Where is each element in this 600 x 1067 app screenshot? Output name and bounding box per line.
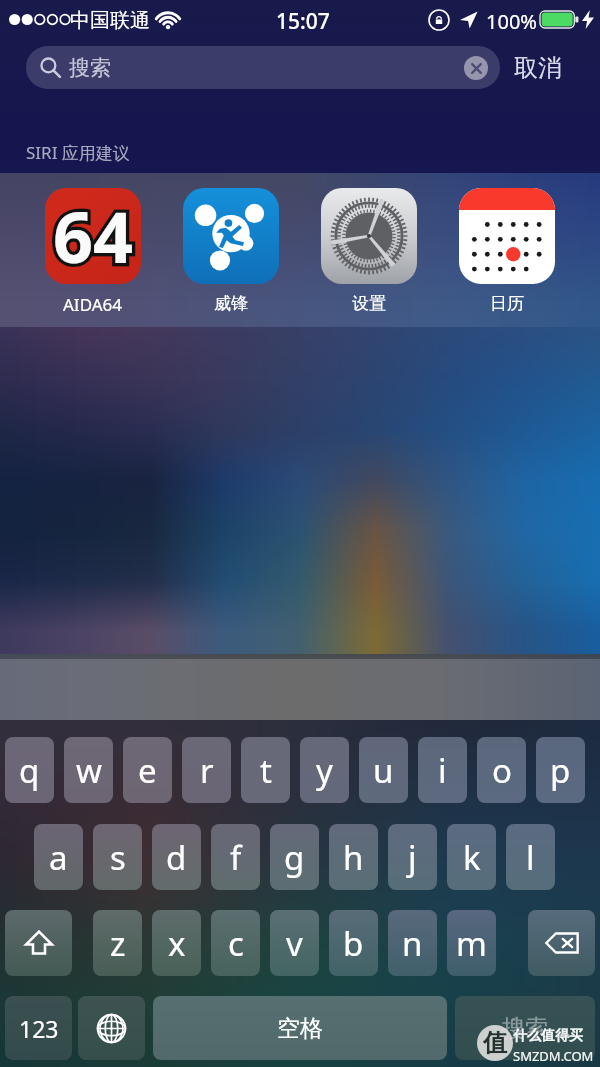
button[interactable]: p	[536, 737, 585, 803]
button[interactable]: j	[388, 824, 437, 890]
staticText: l	[526, 835, 535, 880]
staticText: 中国联通	[70, 8, 150, 33]
staticText: p	[550, 748, 571, 793]
staticText: z	[110, 921, 126, 966]
staticText: x	[168, 921, 186, 966]
staticText: 64	[53, 188, 134, 283]
staticText: r	[200, 748, 214, 793]
button[interactable]: a	[34, 824, 83, 890]
staticText: e	[138, 748, 157, 793]
staticText: s	[110, 835, 126, 880]
button[interactable]: r	[182, 737, 231, 803]
staticText: AIDA64	[63, 293, 123, 316]
button[interactable]: g	[270, 824, 319, 890]
button[interactable]: 123	[5, 996, 72, 1060]
staticText: 搜索	[502, 1014, 548, 1043]
button[interactable]: 设置	[321, 188, 417, 314]
button[interactable]: w	[64, 737, 113, 803]
button[interactable]: t	[241, 737, 290, 803]
button[interactable]: y	[300, 737, 349, 803]
staticText: 取消	[514, 53, 562, 81]
staticText: k	[463, 835, 481, 880]
staticText: h	[343, 835, 364, 880]
button[interactable]: z	[93, 910, 142, 976]
button[interactable]: o	[477, 737, 526, 803]
staticText: 空格	[277, 1014, 323, 1043]
staticText: 日历	[490, 293, 524, 314]
button[interactable]: v	[270, 910, 319, 976]
staticText: w	[76, 748, 102, 793]
staticText: m	[456, 921, 487, 966]
staticText: y	[316, 748, 333, 793]
staticText: SIRI 应用建议	[26, 141, 130, 164]
button[interactable]: q	[5, 737, 54, 803]
staticText: g	[284, 835, 305, 880]
button[interactable]: n	[388, 910, 437, 976]
staticText: t	[260, 748, 272, 793]
staticText: d	[166, 835, 187, 880]
staticText: n	[402, 921, 423, 966]
button[interactable]: h	[329, 824, 378, 890]
button[interactable]: s	[93, 824, 142, 890]
button[interactable]: 64	[45, 188, 141, 316]
staticText: 设置	[352, 293, 386, 314]
staticText: j	[408, 835, 417, 880]
staticText: i	[438, 748, 447, 793]
button[interactable]: x	[152, 910, 201, 976]
staticText: 100%	[486, 8, 537, 35]
button[interactable]: 威锋	[183, 188, 279, 314]
button[interactable]: 空格	[153, 996, 447, 1060]
button[interactable]: d	[152, 824, 201, 890]
button[interactable]: l	[506, 824, 555, 890]
staticText: o	[492, 748, 512, 793]
button[interactable]: c	[211, 910, 260, 976]
button[interactable]: Switch keyboard	[78, 996, 145, 1060]
button[interactable]: 搜索	[26, 46, 500, 89]
button[interactable]: i	[418, 737, 467, 803]
button[interactable]: m	[447, 910, 496, 976]
button[interactable]: Backspace	[528, 910, 595, 976]
staticText: v	[286, 921, 303, 966]
staticText: SMZDM.COM	[513, 1047, 594, 1065]
button[interactable]: 搜索	[455, 996, 595, 1060]
staticText: 64	[53, 188, 134, 283]
staticText: 搜索	[69, 55, 111, 81]
staticText: q	[19, 748, 40, 793]
button[interactable]: Clear search	[464, 56, 488, 80]
staticText: c	[228, 921, 244, 966]
staticText: 什么值得买	[513, 1027, 583, 1045]
staticText: 值	[483, 1028, 507, 1058]
staticText: 威锋	[214, 293, 248, 314]
staticText: b	[343, 921, 364, 966]
button[interactable]: k	[447, 824, 496, 890]
staticText: f	[230, 835, 242, 880]
staticText: a	[49, 835, 68, 880]
staticText: 123	[19, 1013, 59, 1044]
button[interactable]: 取消	[508, 45, 568, 89]
button[interactable]: Shift	[5, 910, 72, 976]
button[interactable]: f	[211, 824, 260, 890]
button[interactable]: b	[329, 910, 378, 976]
button[interactable]: u	[359, 737, 408, 803]
button[interactable]: e	[123, 737, 172, 803]
button[interactable]: 日历	[459, 188, 555, 314]
staticText: 15:07	[276, 7, 330, 36]
staticText: u	[373, 748, 394, 793]
